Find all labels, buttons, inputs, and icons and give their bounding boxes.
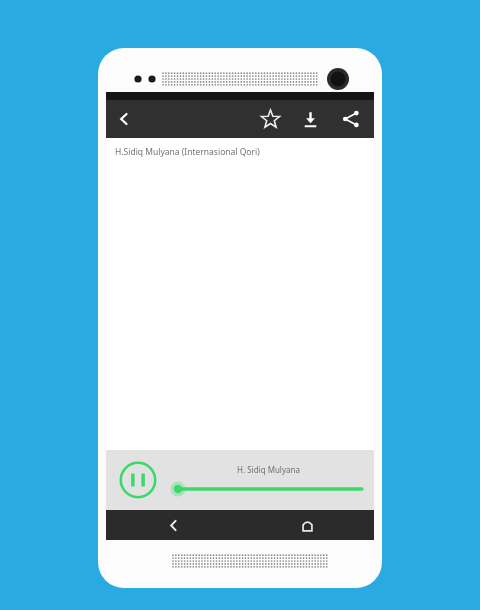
button[interactable]: Pause bbox=[118, 460, 158, 500]
button[interactable]: Back bbox=[106, 100, 142, 138]
button[interactable]: Share bbox=[330, 100, 372, 138]
staticText: H.Sidiq Mulyana (Internasional Qori) bbox=[115, 146, 260, 158]
button[interactable]: Back bbox=[106, 510, 240, 540]
button[interactable]: Home bbox=[240, 510, 374, 540]
button[interactable]: Download bbox=[290, 100, 330, 138]
staticText: H. Sidiq Mulyana bbox=[237, 464, 300, 475]
button[interactable]: Favorite bbox=[250, 100, 290, 138]
button[interactable] bbox=[172, 481, 364, 497]
